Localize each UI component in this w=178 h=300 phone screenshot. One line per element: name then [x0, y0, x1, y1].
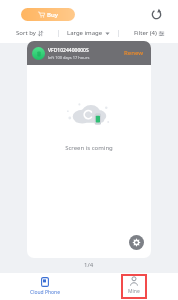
button[interactable]: Sort by [0, 26, 58, 40]
button[interactable]: Refresh [148, 6, 164, 22]
staticText: left 100 days 17 hours [48, 55, 90, 60]
staticText: Sort by [16, 29, 36, 37]
staticText: Mine [128, 288, 140, 295]
button[interactable]: Mine [121, 274, 147, 299]
staticText: VFD1024400000S [48, 47, 89, 54]
staticText: Screen is coming [65, 144, 113, 152]
staticText: Filter (4) [134, 29, 157, 37]
button[interactable]: Settings [129, 235, 144, 250]
staticText: Renew [124, 49, 144, 57]
button[interactable]: Renew [122, 46, 146, 60]
button[interactable]: Cloud Phone [28, 275, 62, 298]
button[interactable]: Large image [59, 26, 118, 40]
staticText: Cloud Phone [30, 289, 60, 296]
button[interactable]: Filter (4) [119, 26, 178, 40]
staticText: Large image [67, 29, 103, 37]
button[interactable]: Buy [21, 8, 75, 21]
staticText: Buy [47, 11, 58, 19]
staticText: 1/4 [84, 261, 94, 269]
button[interactable]: VFD1024400000S [27, 41, 151, 258]
